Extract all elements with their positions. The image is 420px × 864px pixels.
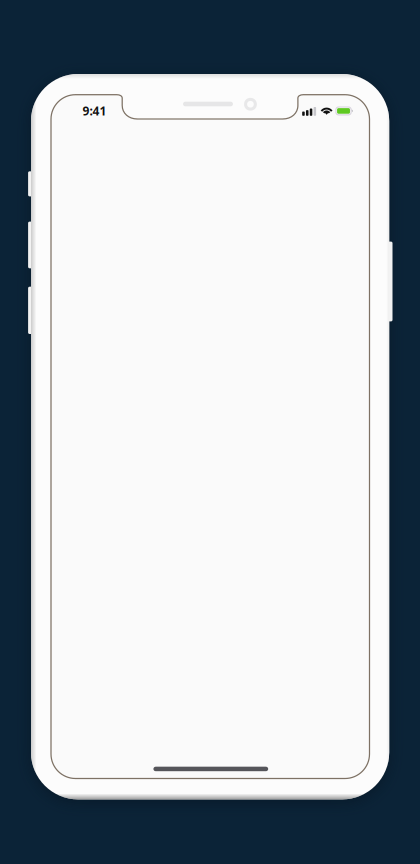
- staticText: 9:41: [83, 103, 107, 119]
